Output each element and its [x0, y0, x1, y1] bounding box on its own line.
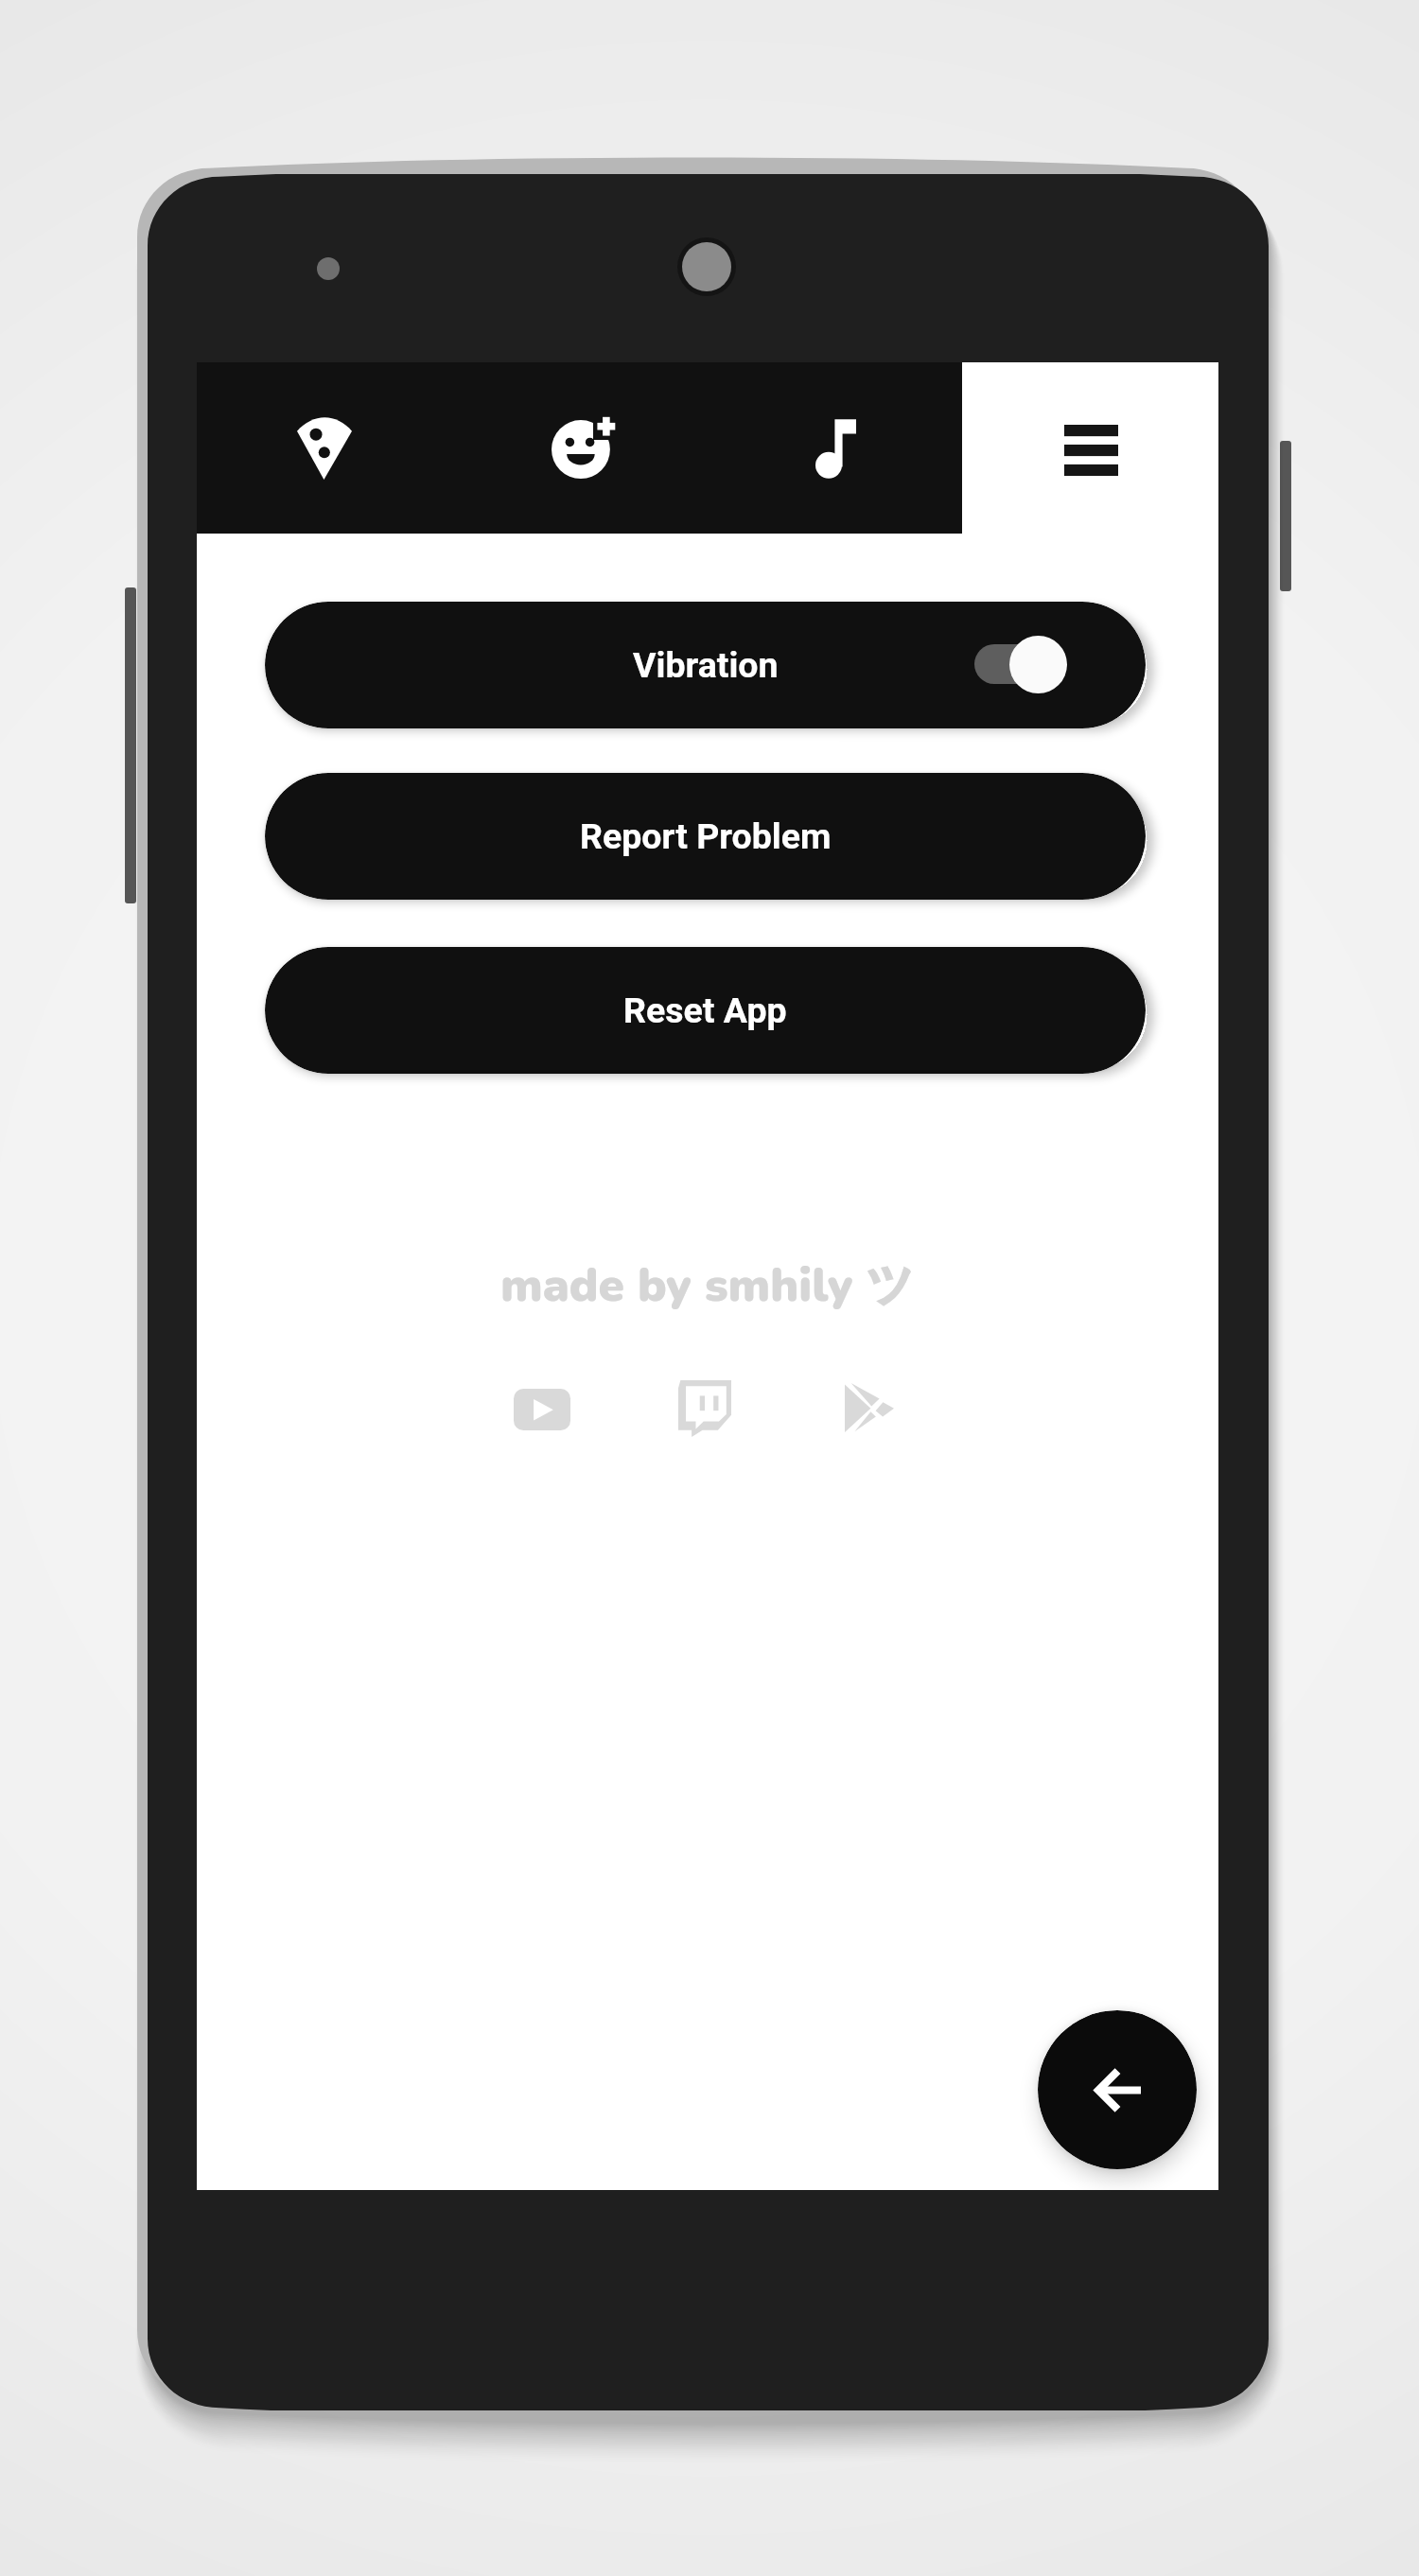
- button[interactable]: YouTube: [490, 1358, 594, 1462]
- button[interactable]: Reset App: [265, 947, 1146, 1074]
- button[interactable]: Back: [1038, 2010, 1197, 2169]
- button[interactable]: Pizza: [277, 401, 372, 496]
- button[interactable]: Vibration: [265, 602, 1146, 728]
- button[interactable]: Menu: [1043, 403, 1138, 498]
- button[interactable]: Twitch: [653, 1357, 757, 1461]
- staticText: Report Problem: [580, 815, 832, 857]
- staticText: made by smhily ツ: [500, 1253, 915, 1318]
- button[interactable]: Music: [788, 401, 883, 496]
- button[interactable]: Add emoji: [536, 400, 631, 495]
- staticText: Vibration: [633, 644, 779, 686]
- staticText: Reset App: [623, 990, 787, 1031]
- button[interactable]: Report Problem: [265, 773, 1146, 900]
- button[interactable]: Google Play: [817, 1356, 921, 1460]
